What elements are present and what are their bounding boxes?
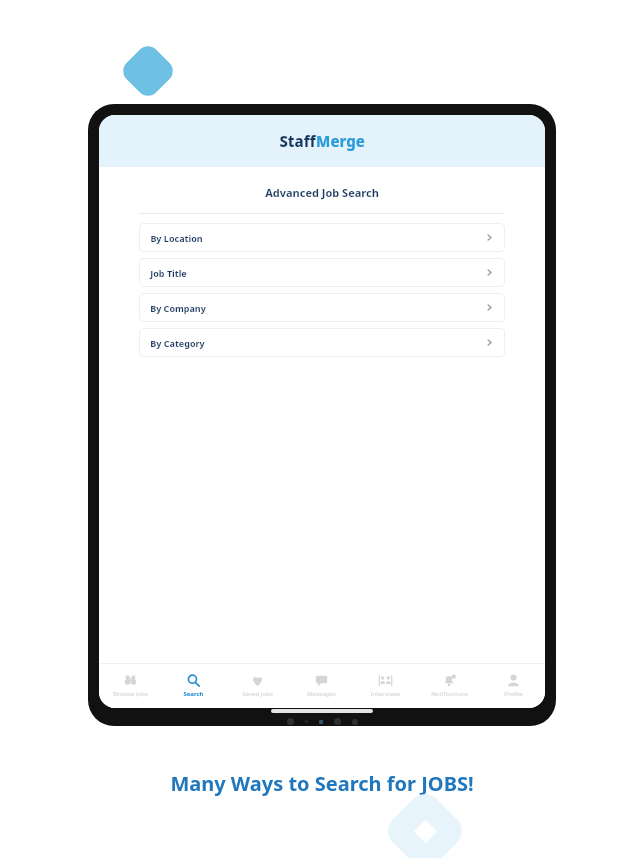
button[interactable]: Saved Jobs: [225, 664, 289, 708]
staticText: Interviews: [370, 690, 401, 698]
staticText: Job Title: [150, 267, 187, 279]
staticText: Many Ways to Search for JOBS!: [170, 770, 474, 797]
button[interactable]: By Category: [139, 328, 505, 357]
staticText: Browse Jobs: [113, 690, 148, 698]
staticText: Search: [183, 690, 204, 698]
staticText: By Category: [150, 337, 205, 349]
staticText: Messages: [307, 690, 336, 698]
staticText: Advanced Job Search: [265, 185, 379, 200]
staticText: Saved Jobs: [242, 690, 273, 698]
staticText: Notifications: [431, 690, 468, 698]
button[interactable]: By Location: [139, 223, 505, 252]
staticText: By Location: [150, 232, 203, 244]
button[interactable]: Job Title: [139, 258, 505, 287]
button[interactable]: Messages: [289, 664, 353, 708]
button[interactable]: Notifications: [417, 664, 481, 708]
staticText: Profile: [504, 690, 523, 698]
button[interactable]: Browse Jobs: [99, 664, 162, 708]
staticText: Merge: [316, 131, 365, 151]
staticText: By Company: [150, 302, 206, 314]
button[interactable]: By Company: [139, 293, 505, 322]
button[interactable]: Interviews: [353, 664, 417, 708]
button[interactable]: Search: [162, 664, 225, 708]
button[interactable]: Profile: [481, 664, 545, 708]
staticText: Staff: [279, 131, 316, 151]
